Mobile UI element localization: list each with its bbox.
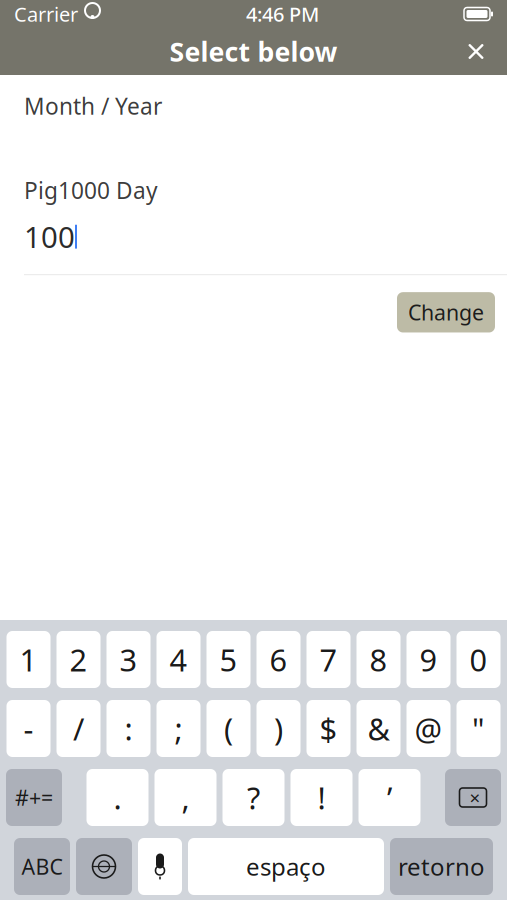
button[interactable]: 4: [156, 631, 200, 688]
staticText: ×: [469, 785, 480, 810]
button[interactable]: espaço: [188, 838, 384, 895]
button[interactable]: :: [106, 700, 150, 757]
button[interactable]: ABC: [14, 838, 70, 895]
staticText: espaço: [246, 851, 326, 882]
button[interactable]: 5: [206, 631, 250, 688]
staticText: ,: [181, 777, 189, 818]
button[interactable]: &: [356, 700, 400, 757]
staticText: Pig1000 Day: [24, 175, 158, 205]
button[interactable]: ,: [154, 769, 216, 826]
button[interactable]: 8: [356, 631, 400, 688]
staticText: (: [224, 708, 233, 749]
button[interactable]: 7: [306, 631, 350, 688]
staticText: 0: [469, 639, 487, 680]
staticText: Carrier: [14, 1, 78, 27]
button[interactable]: Close: [453, 28, 499, 74]
button[interactable]: ;: [156, 700, 200, 757]
staticText: 6: [269, 639, 287, 680]
staticText: @: [414, 708, 442, 749]
button[interactable]: .: [86, 769, 148, 826]
staticText: 2: [69, 639, 87, 680]
button[interactable]: ): [256, 700, 300, 757]
button[interactable]: ?: [222, 769, 284, 826]
staticText: Change: [408, 298, 484, 326]
button[interactable]: !: [290, 769, 352, 826]
button[interactable]: -: [6, 700, 50, 757]
button[interactable]: (: [206, 700, 250, 757]
staticText: !: [317, 777, 325, 818]
button[interactable]: 3: [106, 631, 150, 688]
staticText: 8: [369, 639, 387, 680]
button[interactable]: 2: [56, 631, 100, 688]
staticText: Month / Year: [24, 91, 162, 121]
staticText: 3: [119, 639, 137, 680]
button[interactable]: 6: [256, 631, 300, 688]
button[interactable]: Change: [397, 292, 495, 332]
button[interactable]: 9: [406, 631, 450, 688]
staticText: $: [319, 708, 337, 749]
staticText: ": [472, 708, 485, 749]
staticText: retorno: [398, 851, 485, 882]
staticText: ABC: [21, 852, 62, 881]
staticText: ’: [387, 777, 392, 818]
staticText: 9: [419, 639, 437, 680]
button[interactable]: ’: [358, 769, 420, 826]
staticText: #+=: [15, 783, 53, 812]
staticText: Select below: [169, 34, 337, 69]
staticText: .: [113, 777, 121, 818]
staticText: 7: [319, 639, 337, 680]
staticText: 5: [219, 639, 237, 680]
button[interactable]: #+=: [6, 769, 62, 826]
staticText: ;: [174, 708, 182, 749]
staticText: :: [124, 708, 132, 749]
button[interactable]: ": [456, 700, 500, 757]
staticText: 100: [24, 217, 75, 256]
staticText: 4: [169, 639, 187, 680]
button[interactable]: Change keyboard: [76, 838, 132, 895]
button[interactable]: 0: [456, 631, 500, 688]
staticText: &: [367, 708, 389, 749]
button[interactable]: $: [306, 700, 350, 757]
button[interactable]: Delete: [445, 769, 501, 826]
button[interactable]: Dictation: [138, 838, 182, 895]
staticText: ): [274, 708, 283, 749]
staticText: ?: [247, 777, 260, 818]
button[interactable]: /: [56, 700, 100, 757]
staticText: /: [73, 708, 84, 749]
button[interactable]: 1: [6, 631, 50, 688]
staticText: 1: [19, 639, 37, 680]
button[interactable]: retorno: [390, 838, 493, 895]
staticText: 4:46 PM: [246, 1, 319, 27]
button[interactable]: @: [406, 700, 450, 757]
staticText: -: [23, 708, 33, 749]
